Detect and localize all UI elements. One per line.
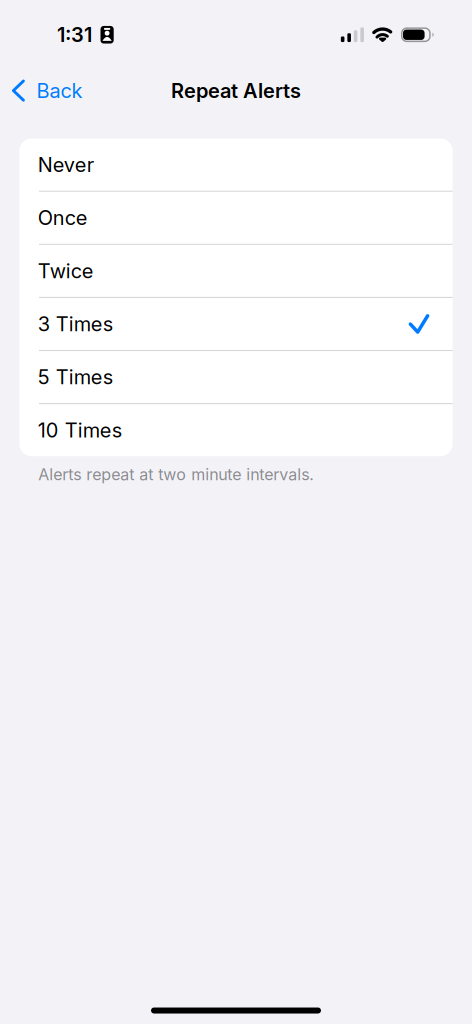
staticText: Repeat Alerts: [171, 78, 301, 103]
button[interactable]: 5 Times: [19, 351, 453, 403]
staticText: Back: [36, 78, 82, 103]
staticText: 3 Times: [38, 312, 113, 336]
staticText: 10 Times: [38, 418, 122, 442]
staticText: 5 Times: [38, 365, 113, 389]
button[interactable]: Once: [19, 192, 453, 244]
button[interactable]: Back: [0, 69, 92, 113]
button[interactable]: 3 Times: [19, 298, 453, 350]
staticText: Twice: [38, 259, 94, 283]
staticText: 1:31: [57, 23, 92, 47]
button[interactable]: Twice: [19, 245, 453, 297]
button[interactable]: 10 Times: [19, 404, 453, 456]
staticText: Once: [38, 206, 88, 230]
staticText: Never: [38, 153, 94, 177]
button[interactable]: Never: [19, 139, 453, 191]
staticText: Alerts repeat at two minute intervals.: [38, 465, 314, 484]
